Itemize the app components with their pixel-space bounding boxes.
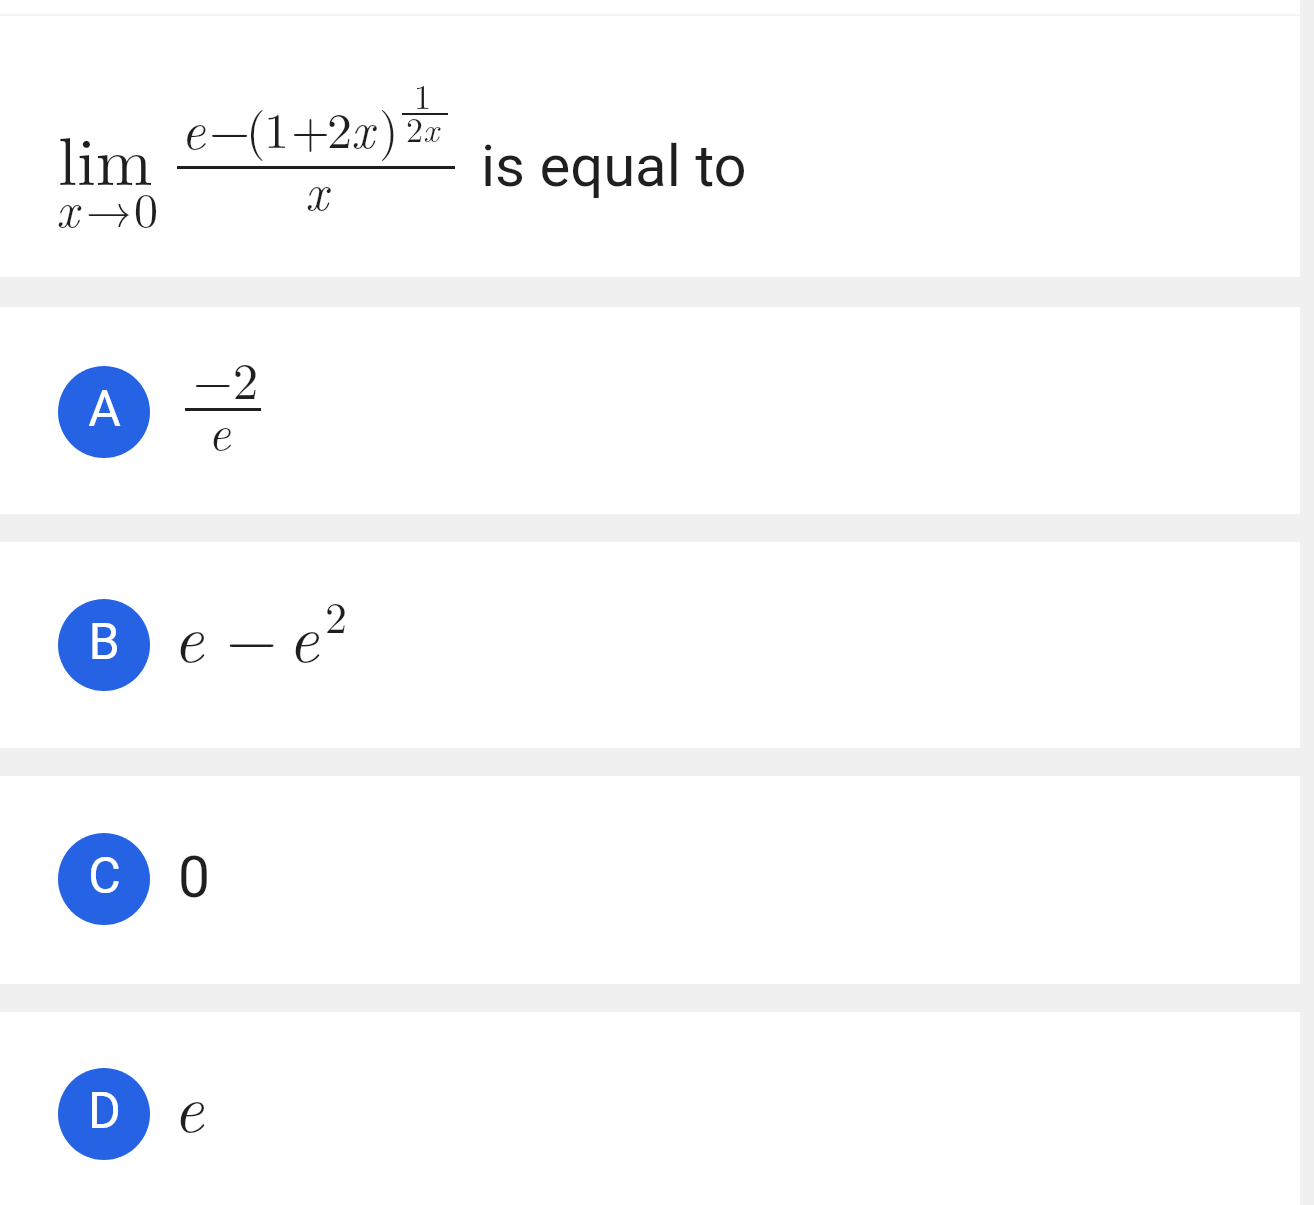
- staticText: +: [291, 92, 330, 163]
- staticText: −: [209, 89, 251, 164]
- staticText: B: [88, 613, 120, 672]
- staticText: 0: [134, 173, 159, 241]
- staticText: x: [423, 104, 439, 152]
- staticText: x: [56, 172, 79, 241]
- staticText: e: [181, 89, 206, 164]
- staticText: e: [288, 587, 319, 682]
- staticText: A: [88, 380, 121, 439]
- staticText: e: [173, 587, 204, 682]
- button[interactable]: Option D: [0, 1012, 1300, 1205]
- staticText: x: [305, 154, 329, 225]
- staticText: 1: [414, 71, 431, 119]
- staticText: e: [173, 1057, 204, 1152]
- staticText: lim: [58, 108, 153, 204]
- button[interactable]: Option A: [0, 307, 1300, 514]
- staticText: ): [379, 92, 399, 163]
- button[interactable]: Option B: [0, 542, 1300, 748]
- staticText: C: [88, 847, 121, 906]
- staticText: x: [351, 92, 375, 163]
- staticText: 1: [264, 92, 289, 163]
- staticText: 2: [327, 92, 352, 163]
- staticText: −2: [193, 342, 259, 414]
- staticText: →: [86, 175, 132, 240]
- button[interactable]: Option C: [0, 776, 1300, 984]
- staticText: D: [88, 1082, 121, 1141]
- staticText: 0: [178, 844, 211, 911]
- button[interactable]: Question: limit as x approaches 0 of (e …: [0, 16, 1300, 277]
- staticText: (: [246, 92, 266, 163]
- staticText: is equal to: [481, 132, 747, 200]
- staticText: −: [226, 588, 278, 682]
- staticText: 2: [325, 583, 347, 645]
- staticText: e: [208, 395, 231, 464]
- staticText: 2: [406, 104, 423, 152]
